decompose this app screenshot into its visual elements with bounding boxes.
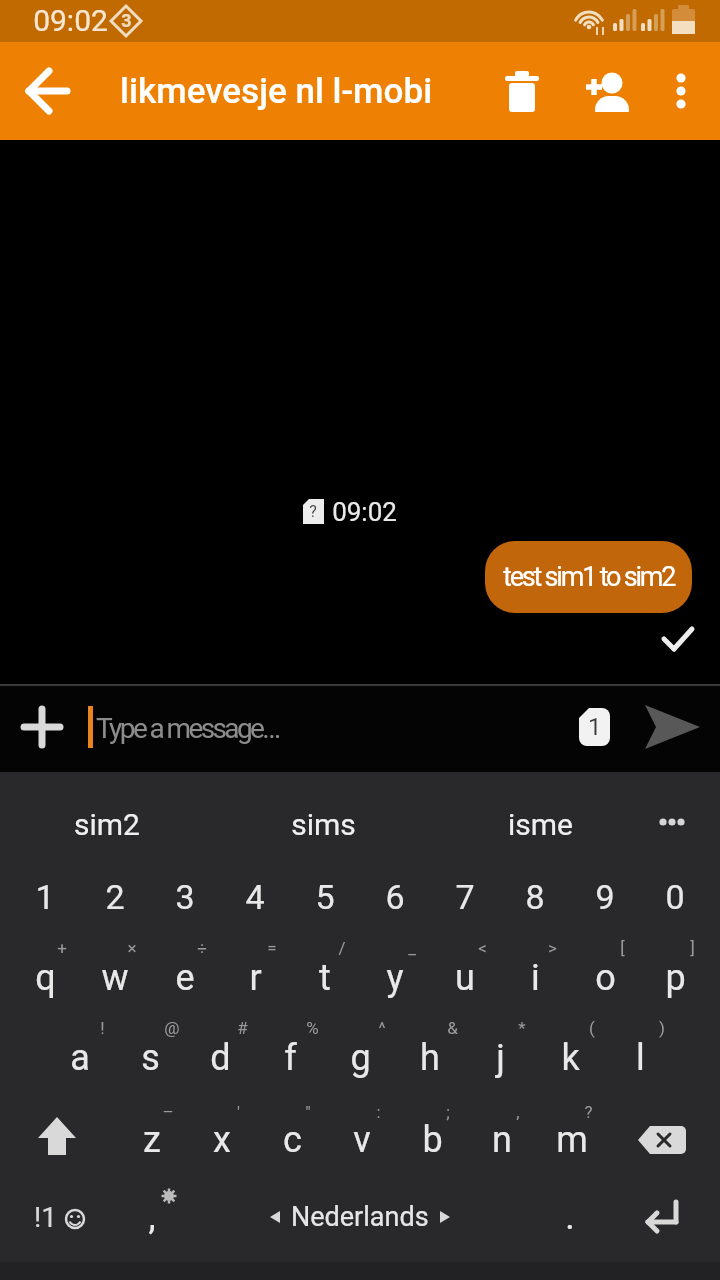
button[interactable]: 9 — [572, 864, 638, 930]
button[interactable]: i — [502, 941, 568, 1015]
button[interactable]: f — [257, 1021, 323, 1095]
button[interactable] — [628, 1112, 698, 1168]
staticText: o — [595, 957, 616, 999]
button[interactable]: h — [397, 1021, 463, 1095]
button[interactable]: q — [12, 941, 78, 1015]
staticText: / — [338, 938, 346, 958]
button[interactable]: d — [187, 1021, 253, 1095]
button[interactable]: Type a message… — [96, 684, 476, 772]
button[interactable]: Nederlands — [220, 1184, 500, 1250]
button[interactable]: 8 — [502, 864, 568, 930]
button[interactable]: 4 — [222, 864, 288, 930]
staticText: @ — [164, 1018, 180, 1038]
staticText: 8 — [525, 877, 545, 917]
staticText: n — [492, 1119, 512, 1161]
button[interactable]: !1 — [5, 1184, 85, 1250]
button[interactable]: 5 — [292, 864, 358, 930]
staticText: ; — [446, 1102, 450, 1122]
button[interactable] — [14, 699, 70, 755]
staticText: , — [516, 1102, 520, 1122]
staticText: z — [143, 1119, 161, 1161]
button[interactable]: isme — [440, 792, 640, 856]
staticText: t — [319, 957, 331, 999]
button[interactable]: n — [469, 1103, 535, 1177]
staticText: ^ — [378, 1018, 386, 1038]
button[interactable]: b — [399, 1103, 465, 1177]
button[interactable]: v — [329, 1103, 395, 1177]
button[interactable] — [628, 1184, 698, 1250]
staticText: : — [376, 1102, 381, 1122]
staticText: Type a message… — [96, 712, 279, 745]
staticText: f — [284, 1037, 297, 1079]
button[interactable]: y — [362, 941, 428, 1015]
staticText: h — [420, 1037, 440, 1079]
button[interactable]: t — [292, 941, 358, 1015]
staticText: i — [531, 957, 540, 999]
staticText: 09:02 — [332, 497, 397, 527]
staticText: ! — [100, 1018, 105, 1038]
button[interactable]: 7 — [432, 864, 498, 930]
button[interactable]: g — [327, 1021, 393, 1095]
button[interactable]: 6 — [362, 864, 428, 930]
staticText: * — [518, 1018, 526, 1038]
button[interactable]: s — [117, 1021, 183, 1095]
staticText: & — [447, 1018, 458, 1038]
button[interactable]: p — [642, 941, 708, 1015]
staticText: × — [127, 938, 137, 958]
staticText: test sim1 to sim2 — [503, 561, 675, 593]
staticText: s — [141, 1037, 160, 1079]
button[interactable]: w — [82, 941, 148, 1015]
button[interactable] — [575, 61, 635, 121]
button[interactable] — [651, 61, 711, 121]
staticText: 1 — [588, 713, 602, 741]
button[interactable]: z — [119, 1103, 185, 1177]
staticText: = — [267, 938, 277, 958]
staticText: ( — [589, 1018, 595, 1038]
staticText: w — [101, 957, 129, 999]
button[interactable] — [18, 61, 78, 121]
button[interactable]: . — [537, 1184, 603, 1250]
staticText: ) — [659, 1018, 665, 1038]
button[interactable]: m — [539, 1103, 605, 1177]
staticText: q — [35, 957, 56, 999]
staticText: e — [175, 957, 195, 999]
button[interactable]: l — [607, 1021, 673, 1095]
staticText: _ — [408, 938, 416, 958]
button[interactable]: k — [537, 1021, 603, 1095]
staticText: isme — [508, 807, 573, 842]
staticText: 6 — [385, 877, 405, 917]
staticText: p — [665, 957, 686, 999]
staticText: k — [561, 1037, 580, 1079]
button[interactable]: x — [189, 1103, 255, 1177]
button[interactable] — [492, 61, 552, 121]
button[interactable]: sim2 — [7, 792, 207, 856]
staticText: j — [496, 1037, 505, 1079]
button[interactable]: 1 — [12, 864, 78, 930]
button[interactable]: 1 — [579, 708, 610, 746]
button[interactable]: u — [432, 941, 498, 1015]
button[interactable]: 0 — [642, 864, 708, 930]
staticText: ÷ — [197, 938, 207, 958]
button[interactable]: c — [259, 1103, 325, 1177]
staticText: 2 — [105, 877, 125, 917]
staticText: g — [350, 1037, 371, 1079]
staticText: 4 — [245, 877, 265, 917]
button[interactable]: j — [467, 1021, 533, 1095]
button[interactable]: o — [572, 941, 638, 1015]
staticText: 0 — [665, 877, 685, 917]
button[interactable]: , — [119, 1184, 185, 1250]
button[interactable] — [22, 1105, 92, 1175]
button[interactable]: 2 — [82, 864, 148, 930]
button[interactable]: a — [47, 1021, 113, 1095]
staticText: 5 — [315, 877, 335, 917]
staticText: sims — [291, 807, 356, 842]
staticText: % — [306, 1018, 319, 1038]
button[interactable]: r — [222, 941, 288, 1015]
button[interactable]: 3 — [152, 864, 218, 930]
staticText: l — [636, 1037, 645, 1079]
button[interactable] — [634, 696, 710, 758]
button[interactable]: test sim1 to sim2 — [485, 541, 692, 613]
button[interactable]: e — [152, 941, 218, 1015]
staticText: x — [213, 1119, 231, 1161]
button[interactable]: sims — [223, 792, 423, 856]
